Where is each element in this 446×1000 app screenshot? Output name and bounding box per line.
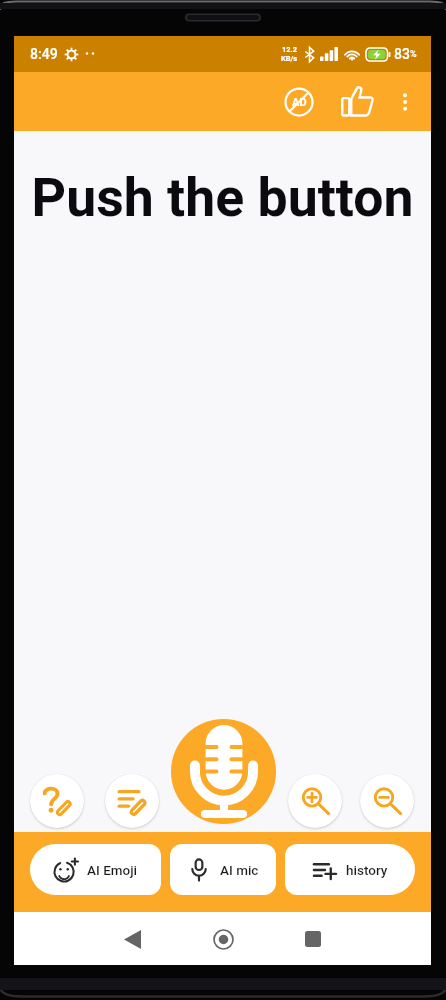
button[interactable]: Zoom out <box>360 774 414 828</box>
button[interactable]: Home <box>199 915 247 963</box>
staticText: AI Emoji <box>87 862 138 878</box>
staticText: history <box>346 862 388 878</box>
button[interactable]: AI Emoji <box>30 844 161 895</box>
button[interactable]: More options <box>385 82 425 122</box>
button[interactable]: Record <box>171 719 276 824</box>
staticText: AI mic <box>220 862 259 878</box>
button[interactable]: history <box>285 844 415 895</box>
button[interactable]: Remove ads <box>275 78 323 126</box>
staticText: AD <box>292 96 307 109</box>
staticText: Push the button <box>14 166 431 229</box>
staticText: 8:49 <box>30 46 58 62</box>
button[interactable]: Like <box>333 78 381 126</box>
button[interactable]: Recents <box>289 915 337 963</box>
staticText: % <box>410 49 417 60</box>
button[interactable]: AI mic <box>170 844 276 895</box>
staticText: 12.2 <box>282 45 298 54</box>
button[interactable]: Edit text <box>105 774 159 828</box>
button[interactable]: Back <box>108 915 156 963</box>
staticText: KB/s <box>281 54 298 63</box>
button[interactable]: Ask question <box>30 774 84 828</box>
button[interactable]: Zoom in <box>288 774 342 828</box>
staticText: 83 <box>394 46 410 62</box>
